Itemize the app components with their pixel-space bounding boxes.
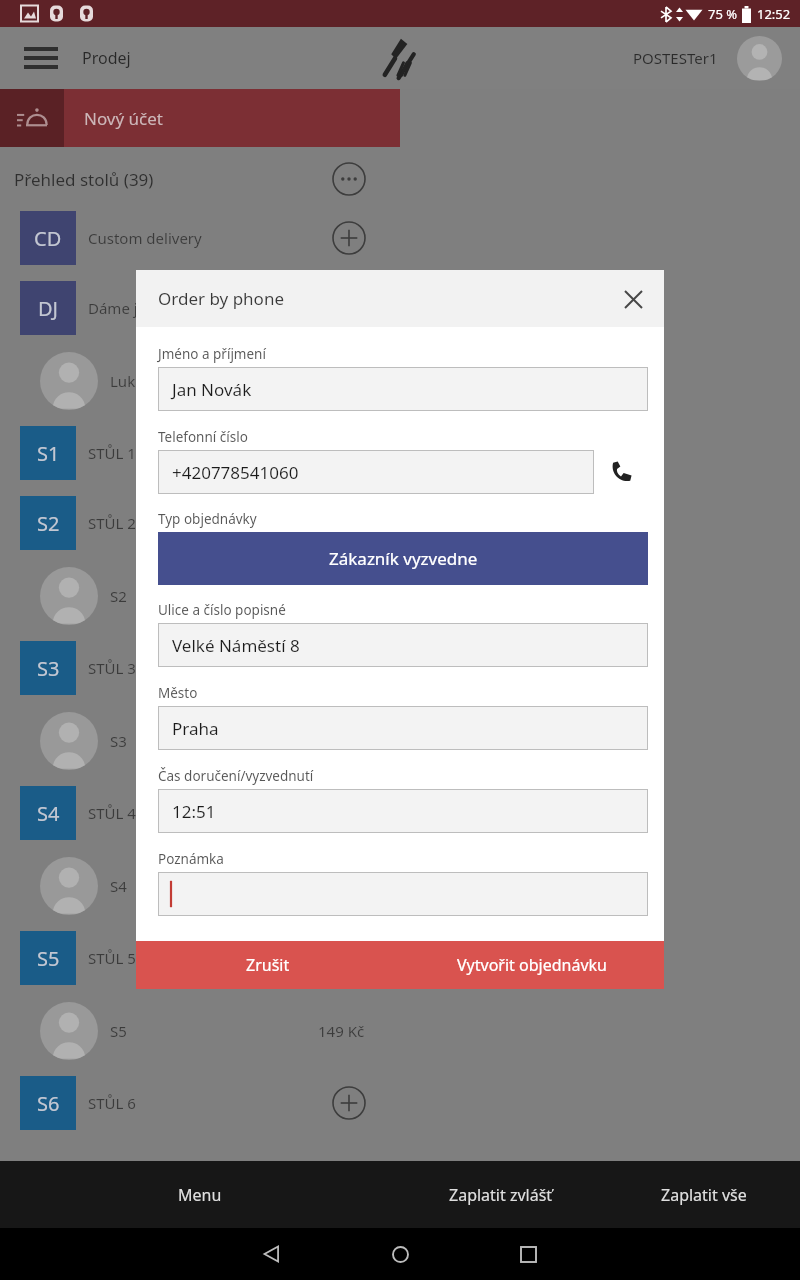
button[interactable]: Call number: [594, 450, 648, 494]
staticText: STŮL 5: [88, 948, 136, 968]
button[interactable]: S3: [0, 633, 800, 703]
button[interactable]: Add order for STŮL 2: [332, 506, 366, 540]
button[interactable]: Velké Náměstí 8: [158, 623, 648, 667]
button[interactable]: Add order for STŮL 1: [332, 436, 366, 470]
staticText: STŮL 4: [88, 803, 136, 823]
staticText: Ulice a číslo popisné: [158, 601, 286, 619]
staticText: 149 Kč: [318, 1021, 365, 1041]
button[interactable]: S2: [0, 558, 800, 633]
staticText: S1: [37, 440, 60, 467]
button[interactable]: Zrušit: [136, 941, 400, 989]
staticText: Custom delivery: [88, 228, 202, 248]
staticText: Velké Náměstí 8: [172, 634, 300, 657]
button[interactable]: S6: [0, 1068, 800, 1138]
staticText: Poznámka: [158, 850, 224, 868]
button[interactable]: Home: [380, 1234, 420, 1274]
staticText: STŮL 6: [88, 1093, 136, 1113]
button[interactable]: S3: [0, 703, 800, 778]
staticText: +420778541060: [172, 461, 299, 484]
button[interactable]: [158, 872, 648, 916]
staticText: Lukáš: [110, 371, 151, 391]
button[interactable]: Zaplatit zvlášť: [420, 1161, 582, 1228]
button[interactable]: Add order for STŮL 3: [332, 651, 366, 685]
button[interactable]: 12:51: [158, 789, 648, 833]
staticText: S2: [110, 586, 127, 606]
button[interactable]: DJ: [0, 273, 800, 343]
button[interactable]: S5: [0, 923, 800, 993]
button[interactable]: Nový účet: [0, 89, 400, 147]
staticText: Zaplatit vše: [661, 1184, 747, 1206]
staticText: Nový účet: [84, 107, 163, 130]
button[interactable]: Back: [252, 1234, 292, 1274]
staticText: Zákazník vyzvedne: [329, 547, 478, 570]
staticText: Jan Novák: [172, 378, 252, 401]
button[interactable]: S1: [0, 418, 800, 488]
button[interactable]: Recents: [508, 1234, 548, 1274]
staticText: Order by phone: [158, 287, 284, 310]
button[interactable]: Close: [616, 282, 650, 316]
staticText: Prodej: [82, 47, 131, 69]
button[interactable]: S4: [0, 848, 800, 923]
staticText: 75 %: [708, 5, 738, 23]
staticText: STŮL 3: [88, 658, 136, 678]
staticText: S4: [37, 800, 60, 827]
staticText: S5: [37, 945, 60, 972]
button[interactable]: Zaplatit vše: [628, 1161, 780, 1228]
staticText: STŮL 2: [88, 513, 136, 533]
button[interactable]: Jan Novák: [158, 367, 648, 411]
button[interactable]: Menu: [22, 41, 62, 75]
staticText: S3: [110, 731, 127, 751]
button[interactable]: Lukáš: [0, 343, 800, 418]
staticText: Město: [158, 684, 198, 702]
staticText: 12:51: [172, 800, 216, 823]
staticText: POSTESTer1: [633, 48, 718, 68]
button[interactable]: Vytvořit objednávku: [400, 941, 664, 989]
button[interactable]: S5: [0, 993, 800, 1068]
staticText: S2: [37, 510, 60, 537]
button[interactable]: CD: [0, 203, 800, 273]
staticText: S5: [110, 1021, 127, 1041]
staticText: 12:52: [757, 5, 791, 23]
button[interactable]: Praha: [158, 706, 648, 750]
button[interactable]: Add order for Custom delivery: [332, 221, 366, 255]
button[interactable]: Zákazník vyzvedne: [158, 532, 648, 585]
staticText: Praha: [172, 717, 219, 740]
button[interactable]: Account: [737, 36, 782, 81]
staticText: Zaplatit zvlášť: [449, 1184, 553, 1206]
staticText: DJ: [38, 295, 59, 322]
button[interactable]: S4: [0, 778, 800, 848]
button[interactable]: +420778541060: [158, 450, 594, 494]
staticText: Čas doručení/vyzvednutí: [158, 767, 314, 785]
staticText: S6: [37, 1090, 60, 1117]
staticText: Zrušit: [246, 954, 290, 976]
staticText: S3: [37, 655, 60, 682]
staticText: Vytvořit objednávku: [457, 954, 607, 976]
staticText: Telefonní číslo: [158, 428, 248, 446]
staticText: Přehled stolů (39): [14, 168, 154, 191]
staticText: S4: [110, 876, 127, 896]
button[interactable]: Add order for STŮL 6: [332, 1086, 366, 1120]
staticText: Jméno a příjmení: [158, 345, 266, 363]
button[interactable]: More options: [332, 162, 366, 196]
staticText: STŮL 1: [88, 443, 136, 463]
button[interactable]: Menu: [140, 1161, 260, 1228]
staticText: CD: [34, 225, 62, 252]
button[interactable]: S2: [0, 488, 800, 558]
staticText: Dáme jídlo: [88, 298, 164, 318]
staticText: Menu: [178, 1184, 222, 1206]
staticText: Typ objednávky: [158, 510, 257, 528]
